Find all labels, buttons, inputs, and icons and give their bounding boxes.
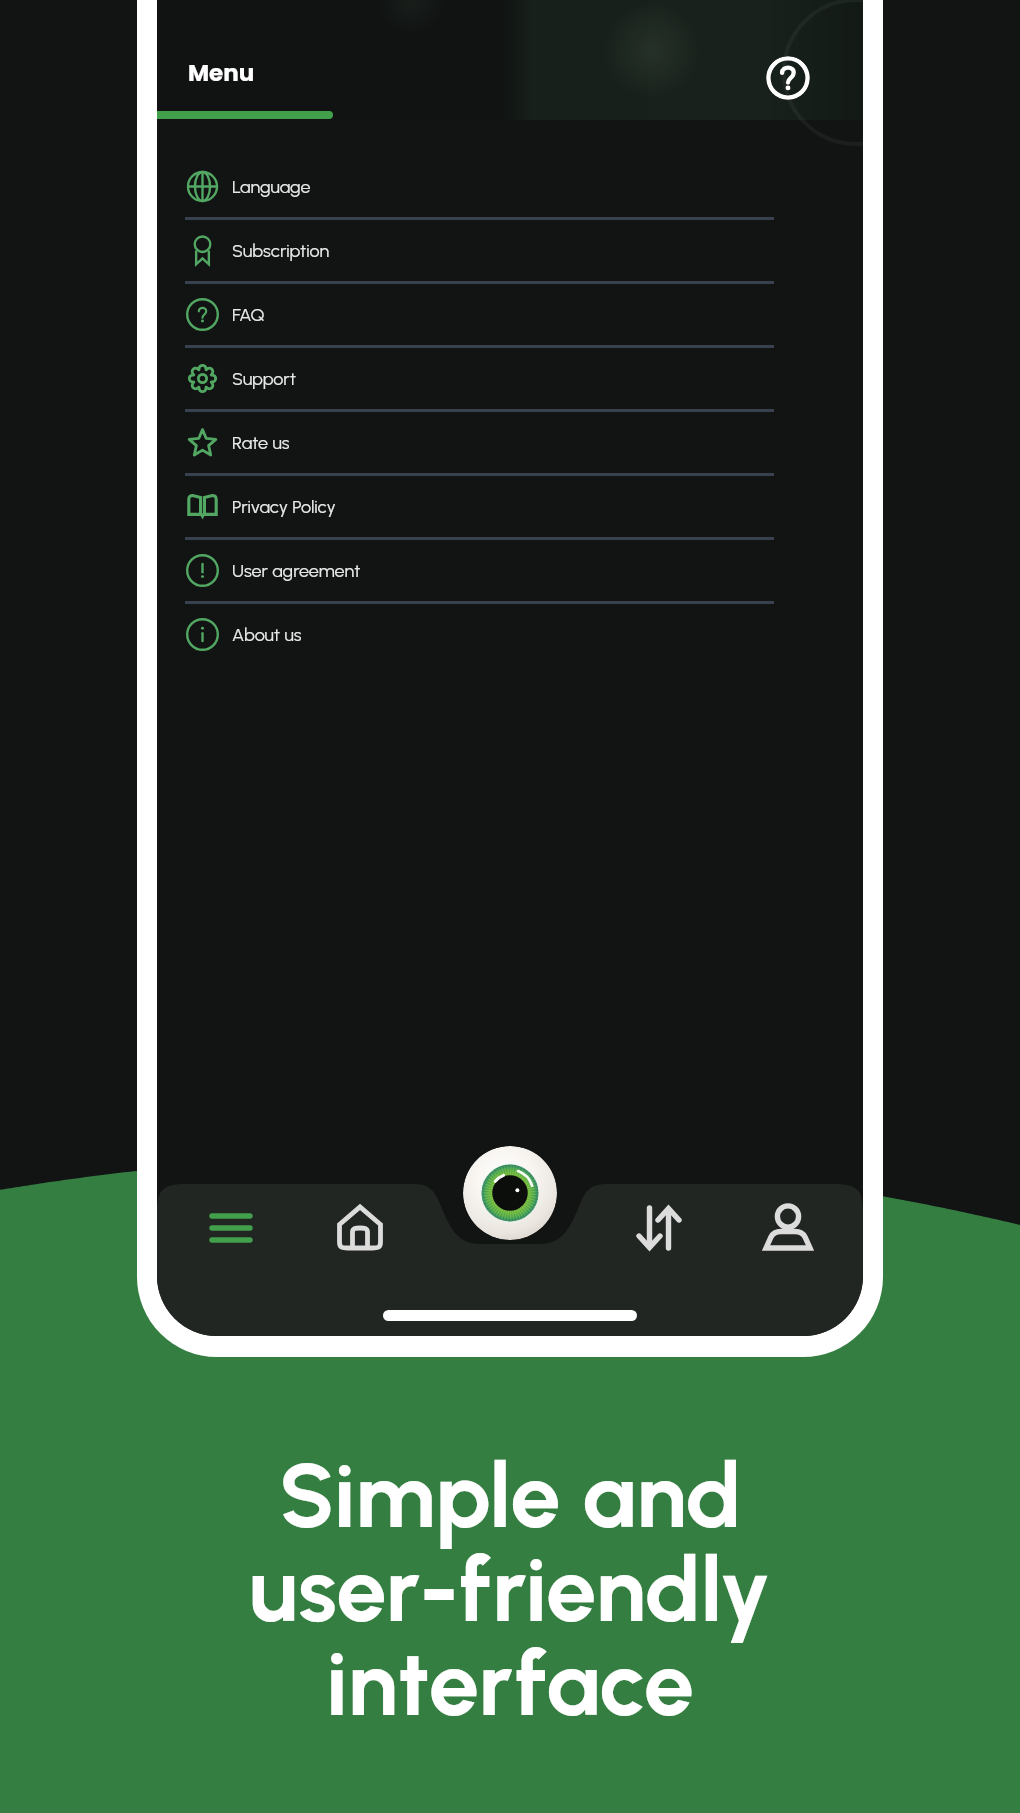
staticText: Privacy Policy <box>232 496 336 518</box>
staticText: Simple and user-friendly interface <box>0 1441 1020 1737</box>
button[interactable]: User agreement <box>157 540 863 601</box>
button[interactable]: Menu <box>203 1200 259 1256</box>
staticText: Subscription <box>232 240 330 262</box>
button[interactable]: Profile <box>760 1199 816 1255</box>
staticText: Menu <box>188 57 255 89</box>
button[interactable]: Scan eye <box>463 1146 557 1240</box>
staticText: User agreement <box>232 560 361 582</box>
button[interactable]: Transfer <box>631 1200 687 1256</box>
button[interactable]: Subscription <box>157 220 863 281</box>
button[interactable]: Support <box>157 348 863 409</box>
staticText: FAQ <box>232 304 265 326</box>
staticText: Language <box>232 176 311 198</box>
button[interactable]: Help <box>766 56 810 100</box>
button[interactable]: Rate us <box>157 412 863 473</box>
button[interactable]: Home <box>332 1200 388 1256</box>
button[interactable]: About us <box>157 604 863 665</box>
button[interactable]: Language <box>157 156 863 217</box>
staticText: Support <box>232 368 296 390</box>
button[interactable]: FAQ <box>157 284 863 345</box>
staticText: Rate us <box>232 432 290 454</box>
button[interactable]: Privacy Policy <box>157 476 863 537</box>
staticText: About us <box>232 624 302 646</box>
